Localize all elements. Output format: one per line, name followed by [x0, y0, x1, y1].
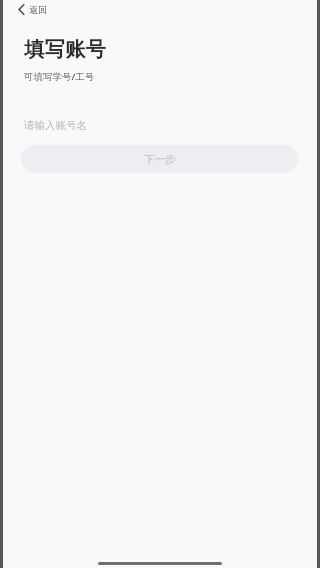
staticText: 填写账号: [24, 37, 106, 62]
button[interactable]: 返回: [16, 1, 49, 17]
staticText: 返回: [29, 4, 47, 15]
staticText: 请输入账号名: [24, 119, 87, 132]
staticText: 可填写学号/工号: [24, 70, 95, 83]
button[interactable]: 下一步: [21, 145, 298, 173]
staticText: 下一步: [144, 153, 176, 166]
button[interactable]: 请输入账号名: [21, 114, 299, 136]
